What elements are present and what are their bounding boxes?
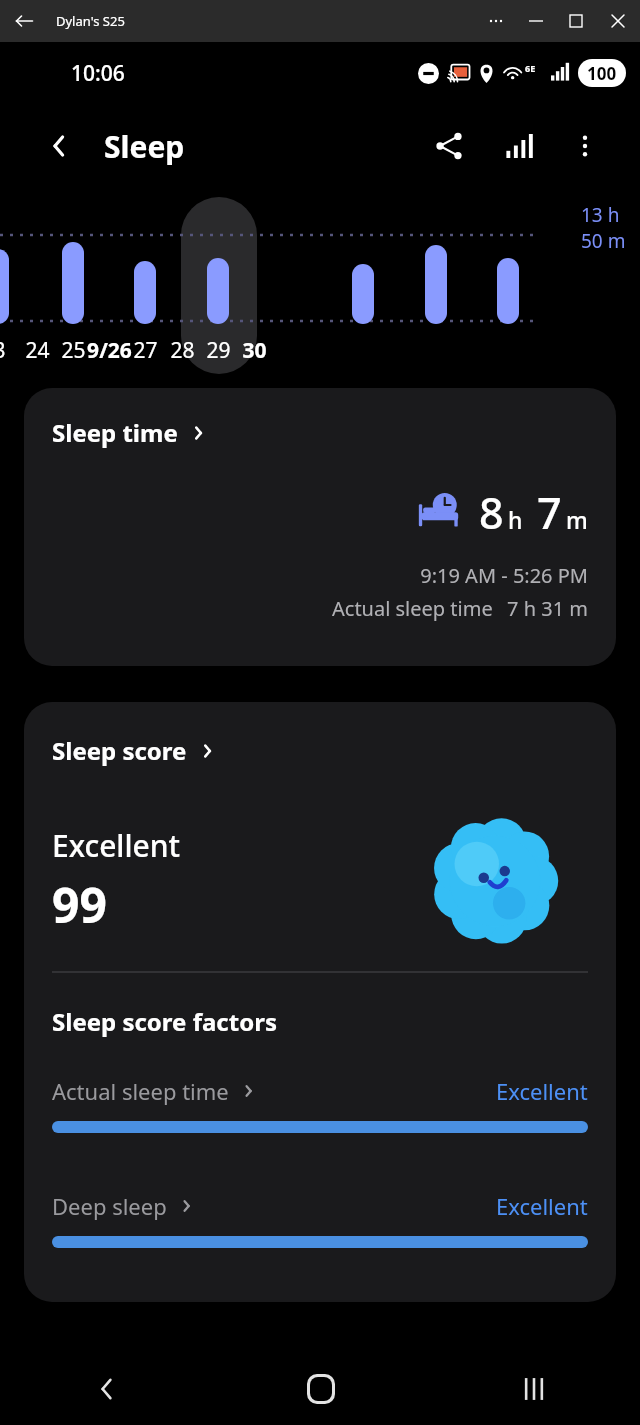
button[interactable]: Back (8, 5, 40, 37)
staticText: Deep sleep (52, 1191, 167, 1221)
staticText: Sleep score factors (52, 1005, 277, 1038)
button[interactable]: Recents (427, 1353, 640, 1425)
staticText: 100 (587, 62, 617, 85)
staticText: Actual sleep time (332, 595, 493, 622)
button[interactable]: Actual sleep time (52, 1076, 588, 1133)
button[interactable]: Minimize (516, 1, 556, 41)
staticText: 29 (206, 336, 231, 365)
staticText: 27 (133, 336, 158, 365)
staticText: m (566, 504, 588, 535)
button[interactable]: More (476, 1, 516, 41)
staticText: Excellent (496, 1191, 588, 1221)
staticText: Sleep time (52, 416, 178, 449)
button[interactable]: Maximize (556, 1, 596, 41)
staticText: 25 (61, 336, 86, 365)
staticText: Sleep score (52, 734, 187, 767)
button[interactable]: Back (0, 1353, 214, 1425)
staticText: 3 (0, 336, 6, 365)
staticText: 50 m (581, 228, 626, 254)
staticText: 99 (52, 872, 107, 937)
staticText: Excellent (52, 825, 181, 866)
staticText: 9:19 AM - 5:26 PM (52, 562, 588, 589)
staticText: 24 (25, 336, 50, 365)
staticText: 6E (525, 62, 536, 74)
staticText: 7 (537, 483, 562, 542)
button[interactable]: Home (214, 1353, 427, 1425)
button[interactable]: Trends (490, 117, 548, 175)
staticText: 13 h (581, 202, 620, 228)
staticText: 10:06 (71, 59, 125, 88)
staticText: Dylan's S25 (56, 12, 125, 30)
button[interactable]: Close (596, 0, 640, 42)
staticText: 7 h 31 m (507, 595, 588, 622)
staticText: h (508, 504, 523, 535)
staticText: 28 (170, 336, 195, 365)
button[interactable]: Deep sleep (52, 1191, 588, 1248)
button[interactable]: Share (420, 117, 478, 175)
button[interactable]: More options (556, 117, 614, 175)
staticText: 9/26 (87, 336, 132, 365)
staticText: Excellent (496, 1076, 588, 1106)
staticText: 8 (479, 483, 504, 542)
button[interactable]: Sleep time (24, 388, 616, 666)
staticText: 30 (242, 336, 267, 365)
button[interactable] (181, 197, 257, 374)
staticText: Sleep (104, 126, 185, 167)
button[interactable]: Sleep time (52, 416, 208, 449)
staticText: Actual sleep time (52, 1076, 229, 1106)
button[interactable]: Sleep score (52, 734, 217, 767)
button[interactable]: Navigate up (36, 123, 82, 169)
